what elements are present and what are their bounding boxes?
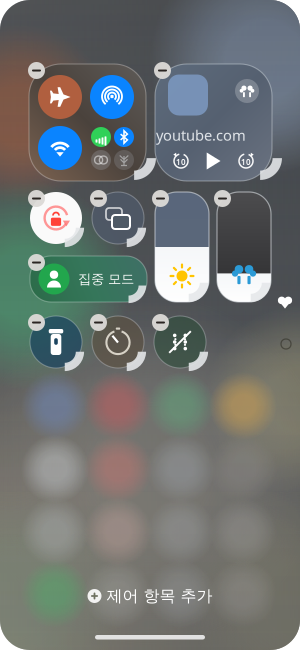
button[interactable]: Remove control — [152, 314, 169, 331]
button[interactable]: Rotation Lock — [30, 192, 82, 244]
button[interactable]: Display Brightness — [155, 192, 209, 302]
button[interactable]: Remove control — [214, 190, 231, 207]
button[interactable]: Remove control — [28, 314, 45, 331]
button[interactable]: Bluetooth — [114, 127, 134, 147]
staticText: 10 — [176, 156, 186, 167]
staticText: 집중 모드 — [78, 271, 134, 287]
button[interactable]: Airplane Mode — [38, 75, 82, 119]
staticText: youtube.com — [156, 125, 246, 145]
button[interactable]: Remove control — [28, 62, 45, 79]
button[interactable]: Add Controls — [95, 585, 205, 607]
button[interactable]: Silence — [154, 316, 206, 368]
button[interactable]: Satellite — [114, 150, 134, 170]
button[interactable]: Screen Mirroring — [92, 192, 144, 244]
button[interactable]: Remove control — [154, 62, 171, 79]
button[interactable]: Remove control — [28, 254, 45, 271]
staticText: 10 — [241, 156, 251, 167]
button[interactable]: Play — [205, 152, 221, 170]
button[interactable]: Skip forward 10 seconds — [237, 152, 254, 169]
staticText: 제어 항목 추가 — [106, 586, 212, 606]
button[interactable]: AirPods — [235, 79, 259, 103]
button[interactable]: Skip back 10 seconds — [172, 152, 189, 169]
button[interactable]: Volume — [217, 192, 271, 302]
button[interactable]: Remove control — [90, 314, 107, 331]
button[interactable]: Personal Hotspot — [91, 150, 111, 170]
button[interactable]: Cellular Data — [91, 127, 111, 147]
button[interactable]: Remove control — [28, 190, 45, 207]
button[interactable]: AirDrop — [90, 75, 134, 119]
button[interactable]: Remove control — [90, 190, 107, 207]
button[interactable]: Wi-Fi — [38, 126, 82, 170]
button[interactable]: Timer — [92, 316, 144, 368]
button[interactable]: Flashlight — [30, 316, 82, 368]
button[interactable]: Remove control — [152, 190, 169, 207]
button[interactable]: Focus — [30, 256, 147, 302]
